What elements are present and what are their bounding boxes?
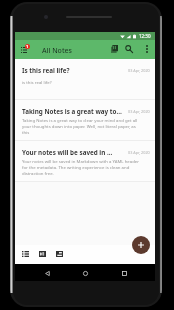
staticText: 03 Apr, 2020: [128, 109, 150, 114]
button[interactable]: Home: [78, 266, 92, 280]
staticText: Taking Notes is a great way to ...: [22, 107, 123, 116]
staticText: All Notes: [42, 46, 72, 56]
button[interactable]: Back: [40, 266, 54, 280]
button[interactable]: Heading: [35, 247, 49, 261]
button[interactable]: Your notes will be saved in ...: [15, 141, 155, 182]
button[interactable]: Search: [122, 42, 136, 56]
staticText: 03 Apr, 2020: [128, 68, 150, 73]
button[interactable]: Recent apps: [117, 266, 131, 280]
staticText: 03 Apr, 2020: [128, 150, 150, 155]
button[interactable]: Notebooks: [107, 42, 121, 56]
button[interactable]: Is this real life?: [15, 59, 155, 100]
staticText: 12:30: [139, 33, 151, 39]
staticText: Your notes will be saved in ...: [22, 148, 123, 157]
button[interactable]: More options: [140, 42, 154, 56]
button[interactable]: Taking Notes is a great way to ...: [15, 100, 155, 141]
button[interactable]: New note: [132, 236, 150, 254]
staticText: 1: [26, 44, 29, 49]
staticText: is this real life?: [22, 79, 142, 85]
button[interactable]: Open navigation drawer: [17, 42, 32, 57]
button[interactable]: Format list: [18, 247, 32, 261]
staticText: Taking Notes is a great way to clear you…: [22, 117, 142, 135]
button[interactable]: Insert image: [52, 247, 66, 261]
staticText: Is this real life?: [22, 66, 123, 75]
staticText: Your notes will be saved in Markdown wit…: [22, 158, 142, 176]
